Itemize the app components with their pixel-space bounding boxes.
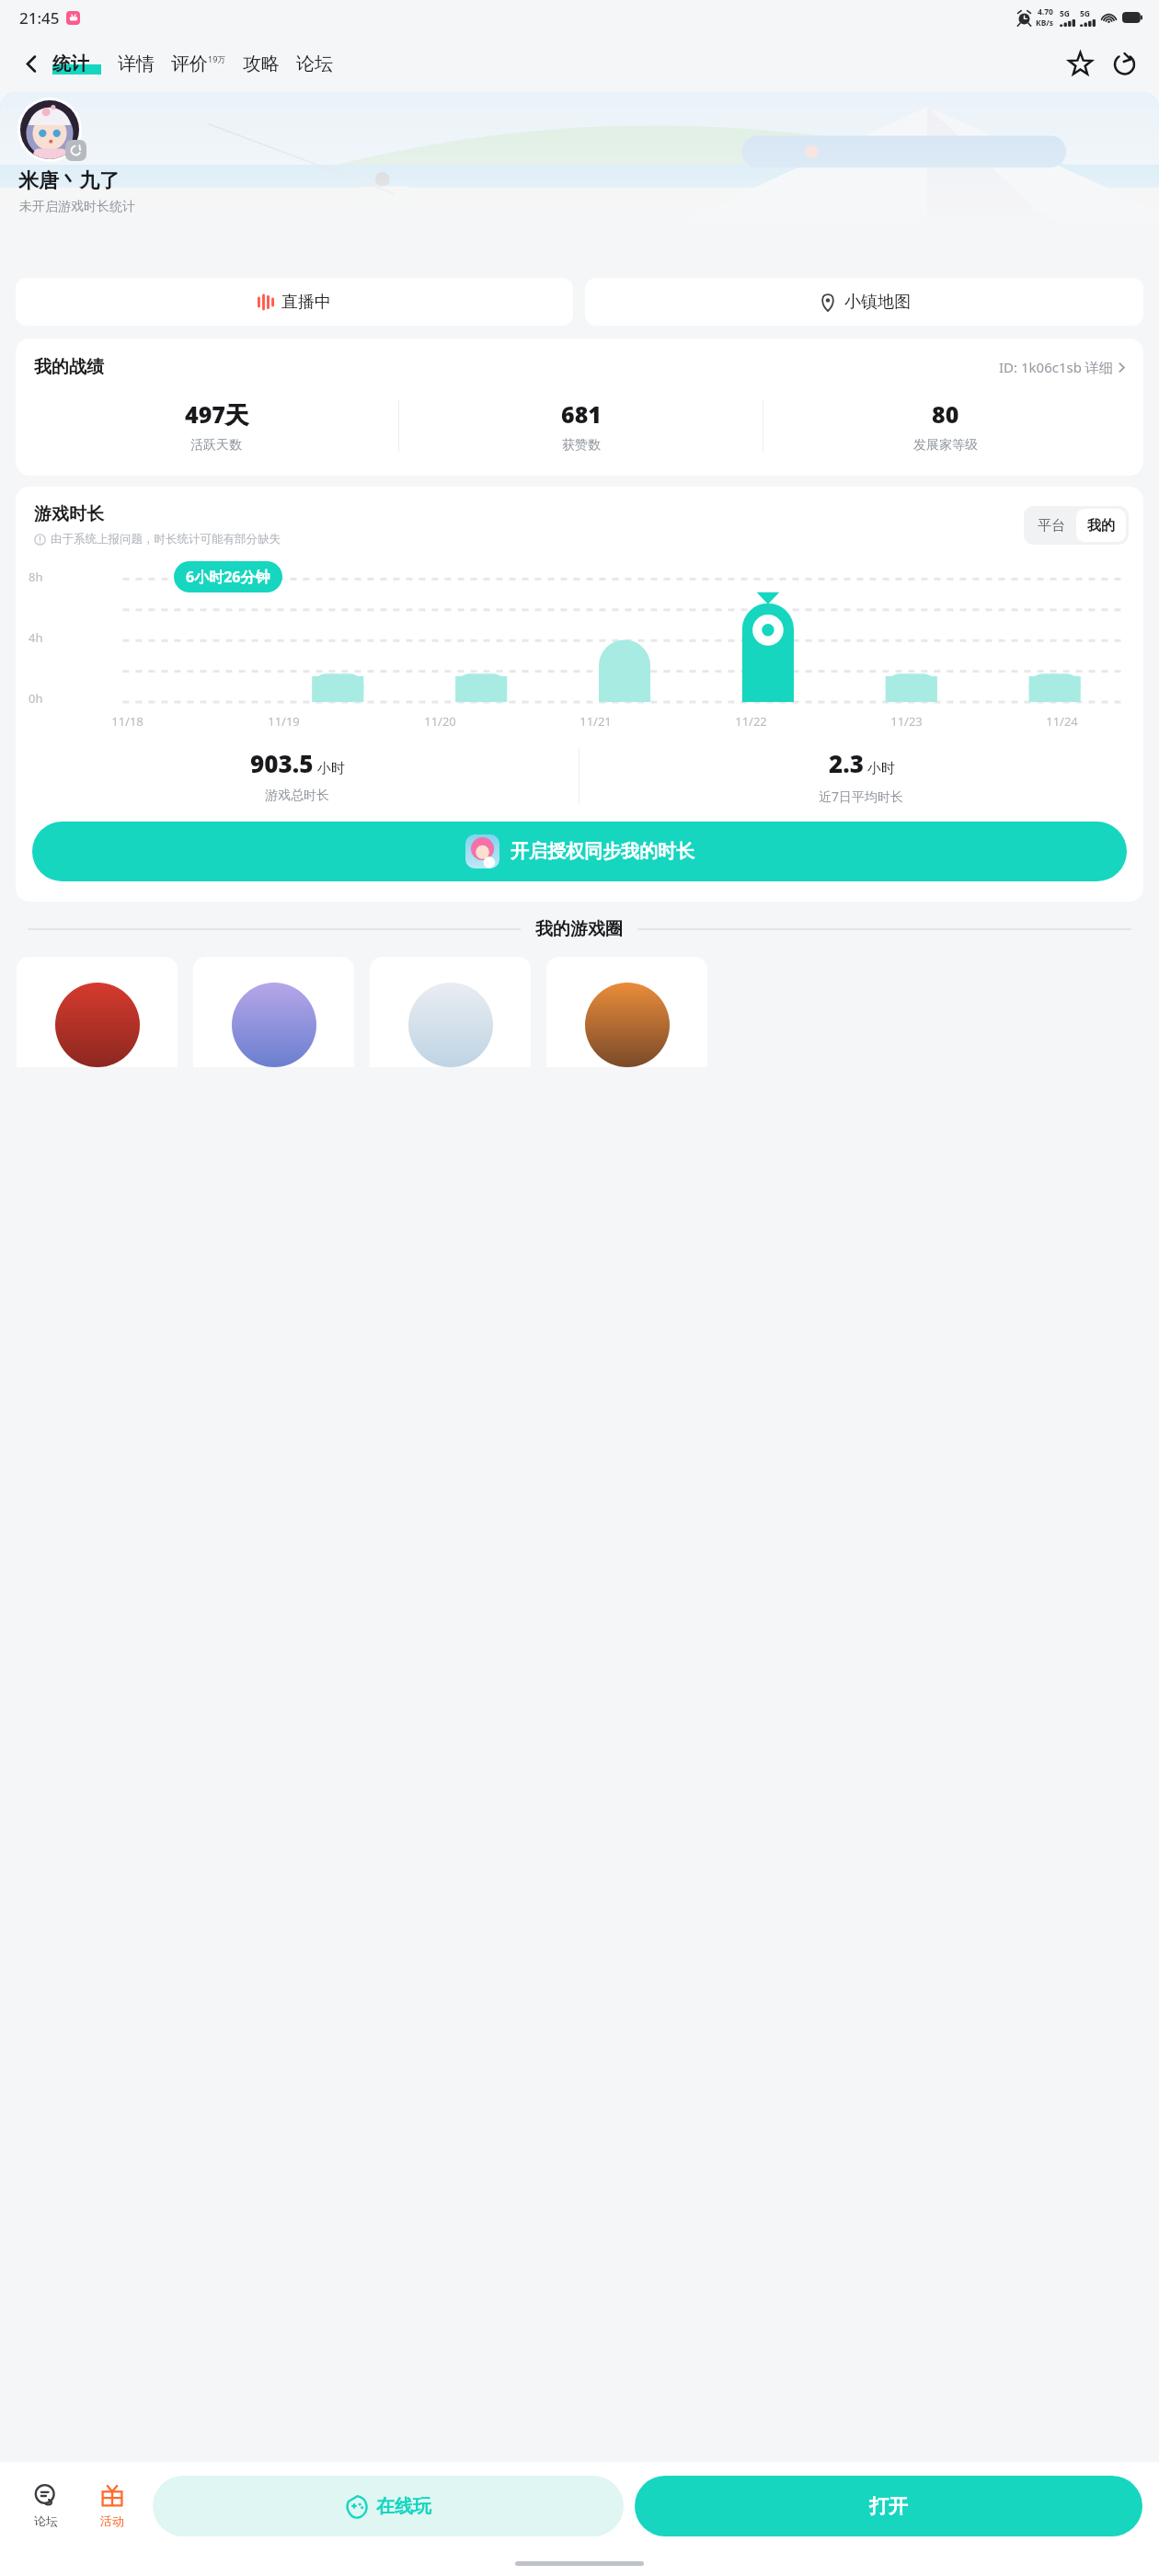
- staticText: 80: [932, 398, 959, 430]
- button[interactable]: 论坛: [295, 52, 334, 75]
- button[interactable]: 打开: [635, 2476, 1142, 2536]
- staticText: 统计: [52, 52, 89, 75]
- staticText: 我的游戏圈: [535, 918, 623, 940]
- staticText: 11/23: [890, 713, 923, 730]
- button[interactable]: 论坛: [13, 2462, 79, 2550]
- button[interactable]: 直播中: [16, 278, 573, 326]
- button[interactable]: 平台: [1027, 509, 1076, 542]
- button[interactable]: 评价: [170, 52, 227, 75]
- staticText: 未开启游戏时长统计: [19, 199, 135, 215]
- staticText: 游戏总时长: [265, 788, 329, 804]
- staticText: 4.70: [1038, 6, 1053, 17]
- staticText: 我的: [1087, 517, 1115, 535]
- staticText: 小时: [317, 760, 345, 777]
- staticText: 攻略: [243, 52, 280, 75]
- staticText: 米唐丶九了: [18, 168, 120, 194]
- button[interactable]: 活动: [79, 2462, 145, 2550]
- staticText: 由于系统上报问题，时长统计可能有部分缺失: [51, 532, 281, 546]
- button[interactable]: [17, 957, 178, 1067]
- staticText: 论坛: [34, 2513, 58, 2528]
- staticText: 11/22: [735, 713, 767, 730]
- staticText: 497天: [185, 398, 248, 430]
- button[interactable]: Favorite: [1060, 43, 1100, 84]
- staticText: 19万: [208, 53, 226, 64]
- button[interactable]: Avatar: [20, 100, 79, 159]
- staticText: 小时: [867, 760, 895, 777]
- button[interactable]: Switch avatar: [65, 140, 86, 161]
- staticText: 直播中: [281, 292, 331, 313]
- staticText: 评价: [171, 52, 208, 75]
- staticText: 论坛: [296, 52, 333, 75]
- button[interactable]: 我的: [1076, 509, 1126, 542]
- button[interactable]: [370, 957, 531, 1067]
- button[interactable]: [546, 957, 707, 1067]
- staticText: 在线玩: [376, 2495, 431, 2518]
- staticText: 21:45: [19, 7, 60, 29]
- button[interactable]: Share: [1104, 43, 1144, 84]
- button[interactable]: 统计: [52, 52, 102, 75]
- staticText: 开启授权同步我的时长: [511, 840, 694, 863]
- staticText: 活跃天数: [190, 437, 242, 454]
- button[interactable]: 详情: [117, 52, 155, 75]
- button[interactable]: 攻略: [242, 52, 281, 75]
- button[interactable]: [193, 957, 354, 1067]
- staticText: 获赞数: [562, 437, 601, 454]
- button[interactable]: 在线玩: [153, 2476, 624, 2536]
- staticText: 11/20: [424, 713, 456, 730]
- staticText: 903.5: [250, 747, 314, 779]
- staticText: KB/s: [1036, 17, 1054, 29]
- staticText: ID: 1k06c1sb 详细: [999, 358, 1113, 376]
- button[interactable]: ID: 1k06c1sb 详细: [999, 358, 1127, 376]
- staticText: 11/24: [1046, 713, 1078, 730]
- staticText: 详情: [118, 52, 155, 75]
- staticText: 发展家等级: [913, 437, 978, 454]
- staticText: 5G: [1060, 8, 1071, 19]
- staticText: 11/19: [268, 713, 300, 730]
- staticText: 游戏时长: [34, 503, 104, 525]
- button[interactable]: 开启授权同步我的时长: [32, 822, 1127, 881]
- staticText: 11/18: [111, 713, 143, 730]
- staticText: 6小时26分钟: [186, 567, 270, 587]
- button[interactable]: 小镇地图: [585, 278, 1143, 326]
- staticText: 4h: [29, 629, 43, 646]
- staticText: 我的战绩: [34, 356, 104, 378]
- button[interactable]: Back: [13, 45, 50, 82]
- staticText: 0h: [29, 690, 43, 707]
- staticText: 近7日平均时长: [819, 788, 904, 805]
- staticText: 5G: [1080, 8, 1091, 19]
- staticText: 681: [561, 398, 602, 430]
- staticText: 打开: [869, 2494, 908, 2518]
- staticText: 平台: [1038, 517, 1065, 535]
- staticText: 11/21: [579, 713, 612, 730]
- staticText: 小镇地图: [844, 292, 911, 313]
- staticText: 8h: [29, 569, 43, 585]
- staticText: 2.3: [829, 747, 864, 779]
- staticText: 活动: [100, 2513, 124, 2528]
